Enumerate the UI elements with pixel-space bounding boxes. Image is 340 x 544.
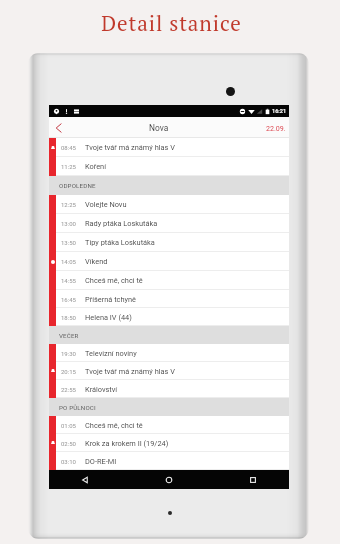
staticText: Helena IV (44) <box>85 313 132 322</box>
staticText: 13:00 <box>61 220 80 227</box>
staticText: 18:50 <box>61 314 80 321</box>
staticText: Volejte Novu <box>85 200 127 209</box>
staticText: ODPOLEDNE <box>59 182 96 189</box>
button[interactable]: Recent apps <box>245 472 261 488</box>
button[interactable]: 11:25 <box>49 157 289 176</box>
staticText: Koření <box>85 162 107 171</box>
button[interactable]: Home <box>161 472 177 488</box>
staticText: 08:45 <box>61 144 80 151</box>
staticText: 03:10 <box>61 458 80 465</box>
button[interactable]: 08:45 <box>49 138 289 157</box>
staticText: VEČER <box>59 332 79 339</box>
staticText: 14:55 <box>61 277 80 284</box>
button[interactable]: 13:50 <box>49 233 289 252</box>
staticText: Rady ptáka Loskutáka <box>85 219 158 228</box>
button[interactable]: 03:10 <box>49 452 289 470</box>
staticText: 16:21 <box>272 108 287 115</box>
button[interactable]: 14:55 <box>49 271 289 290</box>
staticText: 12:25 <box>61 201 80 208</box>
button[interactable]: 20:15 <box>49 362 289 380</box>
button[interactable]: Back <box>49 117 69 138</box>
staticText: Televizní noviny <box>85 349 137 358</box>
staticText: 11:25 <box>61 163 80 170</box>
staticText: Tvoje tvář má známý hlas V <box>85 143 175 152</box>
staticText: Chceš mě, chci tě <box>85 421 143 430</box>
staticText: Krok za krokem II (19/24) <box>85 439 169 448</box>
button[interactable]: 22:55 <box>49 380 289 398</box>
button[interactable]: 18:50 <box>49 308 289 326</box>
button[interactable]: 02:50 <box>49 434 289 452</box>
staticText: Nova <box>149 123 169 133</box>
staticText: 02:50 <box>61 440 80 447</box>
button[interactable]: 19:30 <box>49 344 289 362</box>
staticText: Tipy ptáka Loskutáka <box>85 238 155 247</box>
button[interactable]: 13:00 <box>49 214 289 233</box>
staticText: Víkend <box>85 257 108 266</box>
staticText: DO-RE-MI <box>85 457 117 466</box>
button[interactable]: 16:45 <box>49 290 289 308</box>
staticText: 20:15 <box>61 368 80 375</box>
staticText: Tvoje tvář má známý hlas V <box>85 367 175 376</box>
button[interactable]: 14:05 <box>49 252 289 271</box>
staticText: 16:45 <box>61 296 80 303</box>
staticText: 14:05 <box>61 258 80 265</box>
staticText: 19:30 <box>61 350 80 357</box>
staticText: 22.09. <box>266 124 286 132</box>
staticText: PO PŮLNOCI <box>59 404 96 411</box>
staticText: 22:55 <box>61 386 80 393</box>
button[interactable]: 12:25 <box>49 195 289 214</box>
staticText: Detail stanice <box>101 9 242 37</box>
staticText: Příšerná tchyně <box>85 295 137 304</box>
button[interactable]: Back <box>77 472 93 488</box>
staticText: Chceš mě, chci tě <box>85 276 143 285</box>
staticText: 13:50 <box>61 239 80 246</box>
button[interactable]: 01:05 <box>49 416 289 434</box>
staticText: 01:05 <box>61 422 80 429</box>
staticText: Království <box>85 385 118 394</box>
